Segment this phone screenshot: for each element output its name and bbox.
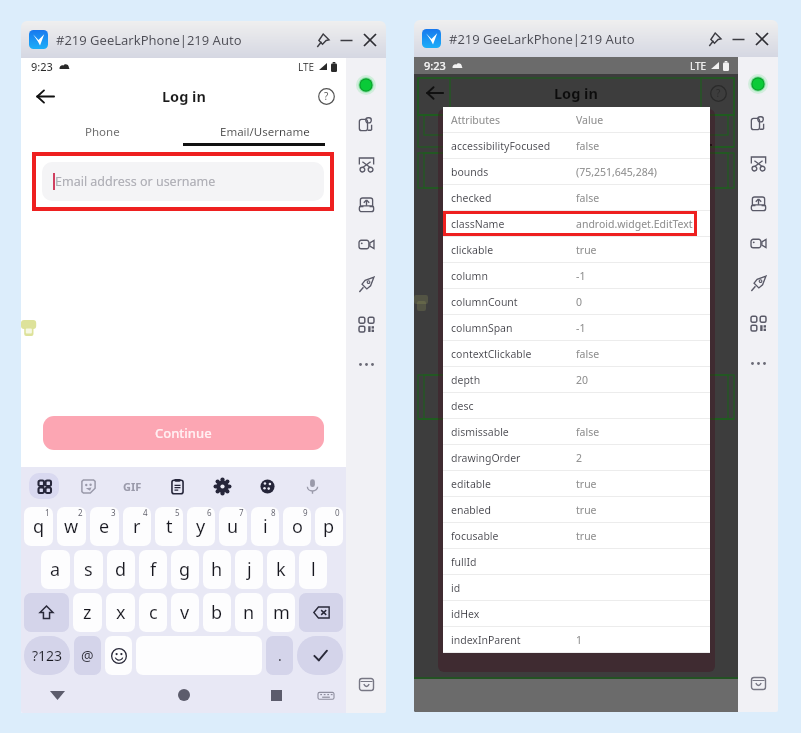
button[interactable]: Help	[706, 81, 730, 105]
button[interactable]: Home	[148, 677, 220, 713]
button[interactable]: enabled	[443, 497, 710, 522]
button[interactable]: Upload	[348, 184, 384, 224]
button[interactable]: idHex	[443, 601, 710, 626]
button[interactable]: Tool 2	[110, 467, 155, 505]
button[interactable]: Record	[348, 224, 384, 264]
button[interactable]: Email/Username	[183, 117, 346, 146]
button[interactable]: Minimize	[335, 29, 357, 51]
button[interactable]: checked	[443, 185, 710, 210]
button[interactable]: Close	[751, 28, 773, 50]
button[interactable]: Emoji	[105, 636, 132, 675]
button[interactable]: Minimize	[727, 28, 749, 50]
button[interactable]: editable	[443, 471, 710, 496]
button[interactable]: a	[41, 550, 70, 589]
button[interactable]: Floating tool	[21, 318, 37, 338]
button[interactable]: Tool 0	[22, 467, 66, 505]
button[interactable]: t	[155, 507, 183, 546]
button[interactable]: n	[235, 593, 263, 632]
button[interactable]: j	[235, 550, 263, 589]
button[interactable]: Copy	[740, 103, 776, 143]
button[interactable]: m	[267, 593, 295, 632]
button[interactable]: Back	[30, 81, 60, 111]
button[interactable]: depth	[443, 367, 710, 392]
button[interactable]: Close	[359, 29, 381, 51]
button[interactable]: indexInParent	[443, 627, 710, 652]
button[interactable]: Continue	[43, 416, 324, 450]
button[interactable]: Boost	[740, 263, 776, 303]
button[interactable]: l	[299, 550, 327, 589]
button[interactable]: Email address or username	[42, 162, 324, 201]
button[interactable]: c	[139, 593, 167, 632]
button[interactable]: v	[171, 593, 199, 632]
staticText: -1	[576, 321, 586, 335]
button[interactable]: x	[106, 593, 135, 632]
button[interactable]: Cut	[348, 144, 384, 184]
button[interactable]: Attributes	[443, 107, 710, 132]
button[interactable]: g	[171, 550, 199, 589]
button[interactable]: QR	[348, 304, 384, 344]
button[interactable]: Phone	[21, 117, 183, 146]
button[interactable]: Back	[422, 80, 448, 106]
button[interactable]: Keyboard	[306, 677, 346, 713]
button[interactable]: e	[90, 507, 119, 546]
button[interactable]: accessibilityFocused	[443, 133, 710, 158]
button[interactable]: Status	[353, 72, 379, 98]
button[interactable]: Tool 5	[245, 467, 290, 505]
button[interactable]: Back	[21, 677, 93, 713]
button[interactable]: f	[139, 550, 167, 589]
button[interactable]: Pin	[703, 28, 725, 50]
button[interactable]: Inbox	[351, 669, 381, 699]
button[interactable]: columnSpan	[443, 315, 710, 340]
button[interactable]: Tool 3	[155, 467, 200, 505]
button[interactable]: More	[740, 343, 776, 383]
button[interactable]: Status	[745, 71, 771, 97]
button[interactable]: y	[187, 507, 215, 546]
button[interactable]: Boost	[348, 264, 384, 304]
button[interactable]: o	[283, 507, 311, 546]
button[interactable]: Enter	[297, 636, 343, 675]
button[interactable]: b	[203, 593, 231, 632]
button[interactable]: fullId	[443, 549, 710, 574]
button[interactable]: Inbox	[743, 668, 773, 698]
button[interactable]: ?123	[24, 636, 70, 675]
button[interactable]: column	[443, 263, 710, 288]
button[interactable]: Help	[312, 82, 340, 110]
button[interactable]: Recents	[240, 677, 312, 713]
button[interactable]: .	[266, 636, 293, 675]
button[interactable]: QR	[740, 303, 776, 343]
button[interactable]: p	[315, 507, 343, 546]
button[interactable]: r	[123, 507, 151, 546]
button[interactable]: id	[443, 575, 710, 600]
button[interactable]: s	[74, 550, 103, 589]
button[interactable]: bounds	[443, 159, 710, 184]
button[interactable]: Pin	[311, 29, 333, 51]
button[interactable]: Cut	[740, 143, 776, 183]
button[interactable]: i	[251, 507, 279, 546]
button[interactable]: Tool 6	[290, 467, 335, 505]
button[interactable]: className	[443, 211, 710, 236]
button[interactable]: focusable	[443, 523, 710, 548]
button[interactable]: h	[203, 550, 231, 589]
button[interactable]: Tool 4	[200, 467, 245, 505]
button[interactable]: Tool 1	[66, 467, 110, 505]
button[interactable]: Key	[299, 593, 343, 632]
button[interactable]: Key	[24, 593, 69, 632]
button[interactable]: columnCount	[443, 289, 710, 314]
button[interactable]: k	[267, 550, 295, 589]
button[interactable]: clickable	[443, 237, 710, 262]
button[interactable]: Upload	[740, 183, 776, 223]
button[interactable]: More	[348, 344, 384, 384]
button[interactable]: Record	[740, 223, 776, 263]
button[interactable]: d	[107, 550, 135, 589]
button[interactable]: dismissable	[443, 419, 710, 444]
button[interactable]: Copy	[348, 104, 384, 144]
button[interactable]: w	[57, 507, 86, 546]
button[interactable]: u	[219, 507, 247, 546]
button[interactable]: @	[74, 636, 101, 675]
button[interactable]: desc	[443, 393, 710, 418]
button[interactable]: contextClickable	[443, 341, 710, 366]
button[interactable]: drawingOrder	[443, 445, 710, 470]
button[interactable]: z	[73, 593, 102, 632]
button[interactable]: q	[24, 507, 53, 546]
